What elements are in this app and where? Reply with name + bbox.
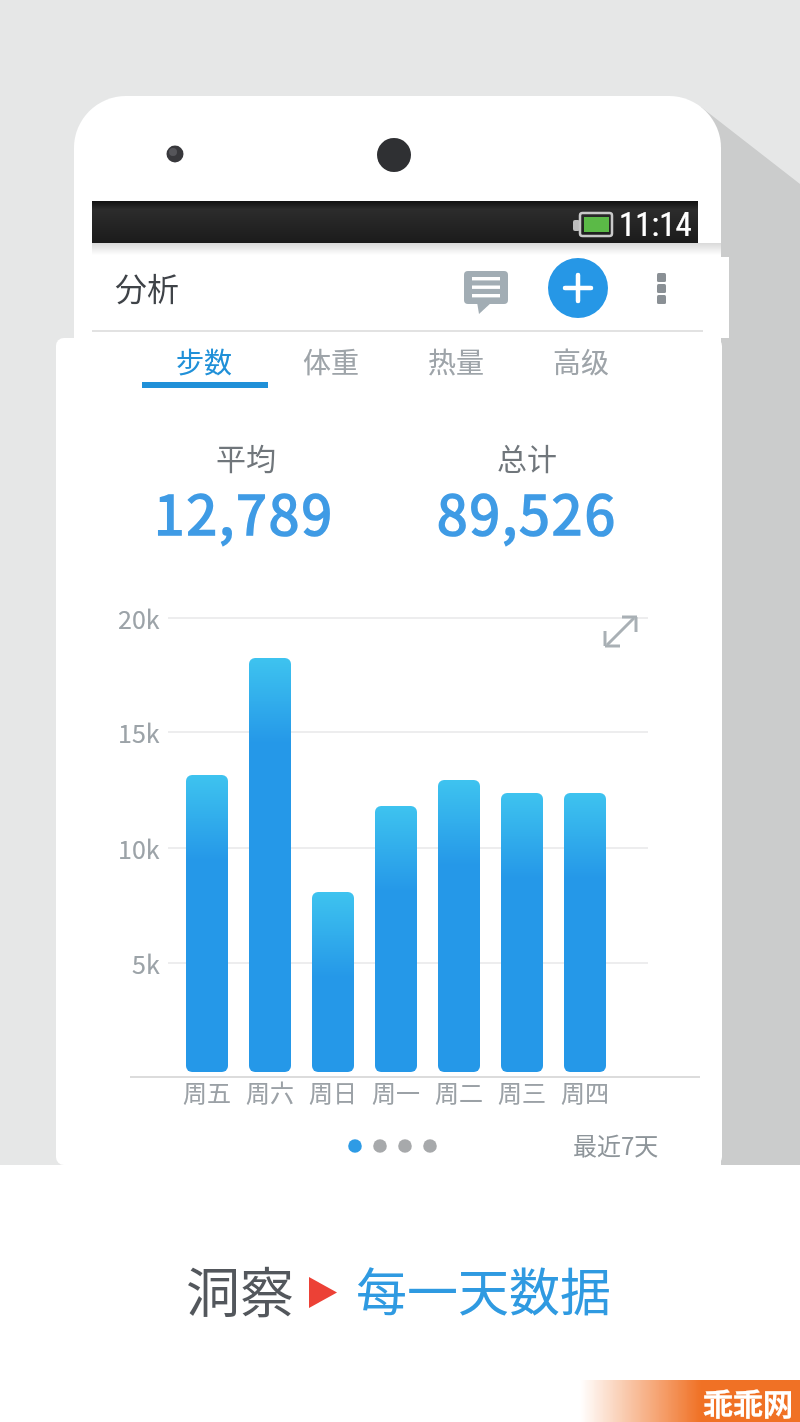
staticText: 周日: [309, 1074, 357, 1109]
button[interactable]: [344, 1134, 442, 1158]
button[interactable]: 高级: [521, 321, 641, 401]
button[interactable]: [598, 610, 642, 654]
staticText: 20k: [118, 600, 160, 636]
staticText: 周五: [183, 1074, 231, 1109]
button[interactable]: 步数: [144, 321, 264, 401]
staticText: 10k: [118, 830, 160, 866]
staticText: 周一: [372, 1074, 420, 1109]
staticText: 乖乖网: [703, 1380, 793, 1422]
button[interactable]: 热量: [396, 321, 516, 401]
staticText: 周三: [498, 1074, 546, 1109]
staticText: 5k: [132, 945, 160, 981]
staticText: 总计: [497, 435, 557, 478]
staticText: 体重: [303, 341, 360, 382]
staticText: 步数: [176, 341, 233, 382]
staticText: 周六: [246, 1074, 294, 1109]
staticText: 周二: [435, 1074, 483, 1109]
staticText: 89,526: [437, 471, 617, 551]
staticText: 热量: [428, 341, 485, 382]
staticText: 洞察: [186, 1250, 294, 1328]
staticText: 最近7天: [573, 1127, 659, 1162]
button[interactable]: [645, 260, 679, 316]
staticText: 每一天数据: [356, 1252, 612, 1326]
staticText: 分析: [115, 264, 180, 310]
button[interactable]: 体重: [271, 321, 391, 401]
staticText: 11:14: [619, 205, 692, 244]
staticText: 15k: [118, 714, 160, 750]
button[interactable]: [548, 258, 608, 318]
staticText: 12,789: [154, 471, 334, 551]
staticText: 高级: [553, 341, 610, 382]
button[interactable]: [458, 264, 514, 316]
staticText: 平均: [216, 435, 276, 478]
staticText: 周四: [561, 1074, 609, 1109]
